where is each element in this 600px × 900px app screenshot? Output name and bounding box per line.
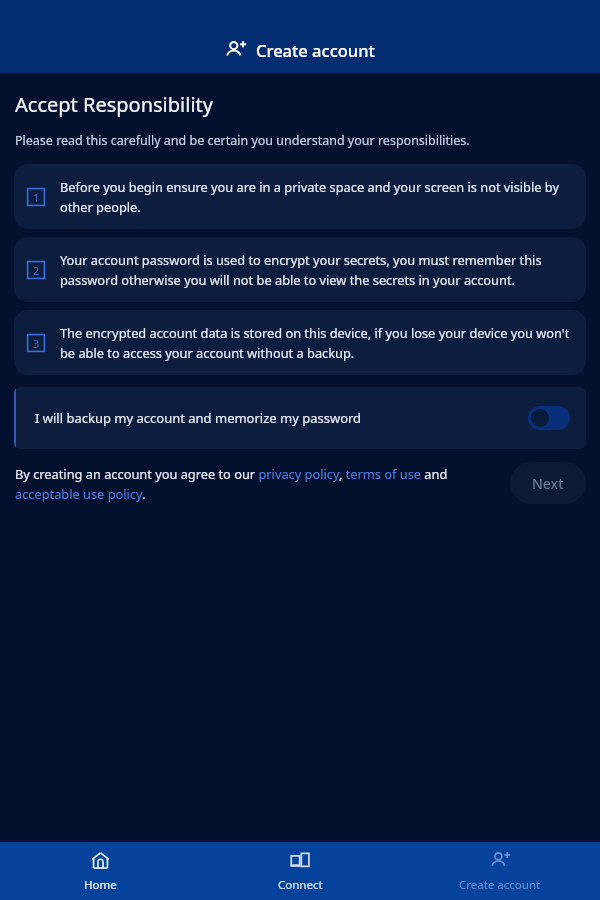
button[interactable]: Home: [0, 842, 200, 900]
staticText: Home: [84, 877, 117, 893]
staticText: Accept Responsibility: [15, 91, 213, 118]
staticText: Next: [532, 474, 564, 493]
button[interactable]: 1: [14, 164, 586, 229]
button[interactable]: 3: [14, 310, 586, 375]
button[interactable]: Create account: [400, 842, 600, 900]
button[interactable]: Connect: [200, 842, 400, 900]
button[interactable]: By creating an account you agree to our …: [15, 465, 500, 502]
button[interactable]: 2: [14, 237, 586, 302]
staticText: Your account password is used to encrypt…: [60, 251, 570, 288]
staticText: Create account: [459, 877, 541, 893]
staticText: Connect: [278, 877, 323, 893]
staticText: 1: [33, 190, 40, 205]
staticText: Please read this carefully and be certai…: [15, 132, 470, 149]
staticText: I will backup my account and memorize my…: [35, 409, 528, 427]
staticText: Create account: [256, 39, 375, 61]
staticText: 3: [33, 336, 40, 351]
staticText: The encrypted account data is stored on …: [60, 324, 570, 361]
staticText: 2: [33, 263, 40, 278]
button[interactable]: Create account: [215, 39, 385, 73]
button[interactable]: Next: [510, 462, 586, 504]
button[interactable]: I will backup my account and memorize my…: [14, 387, 586, 449]
staticText: Before you begin ensure you are in a pri…: [60, 178, 570, 215]
button[interactable]: Toggle backup acknowledgement: [528, 406, 570, 430]
